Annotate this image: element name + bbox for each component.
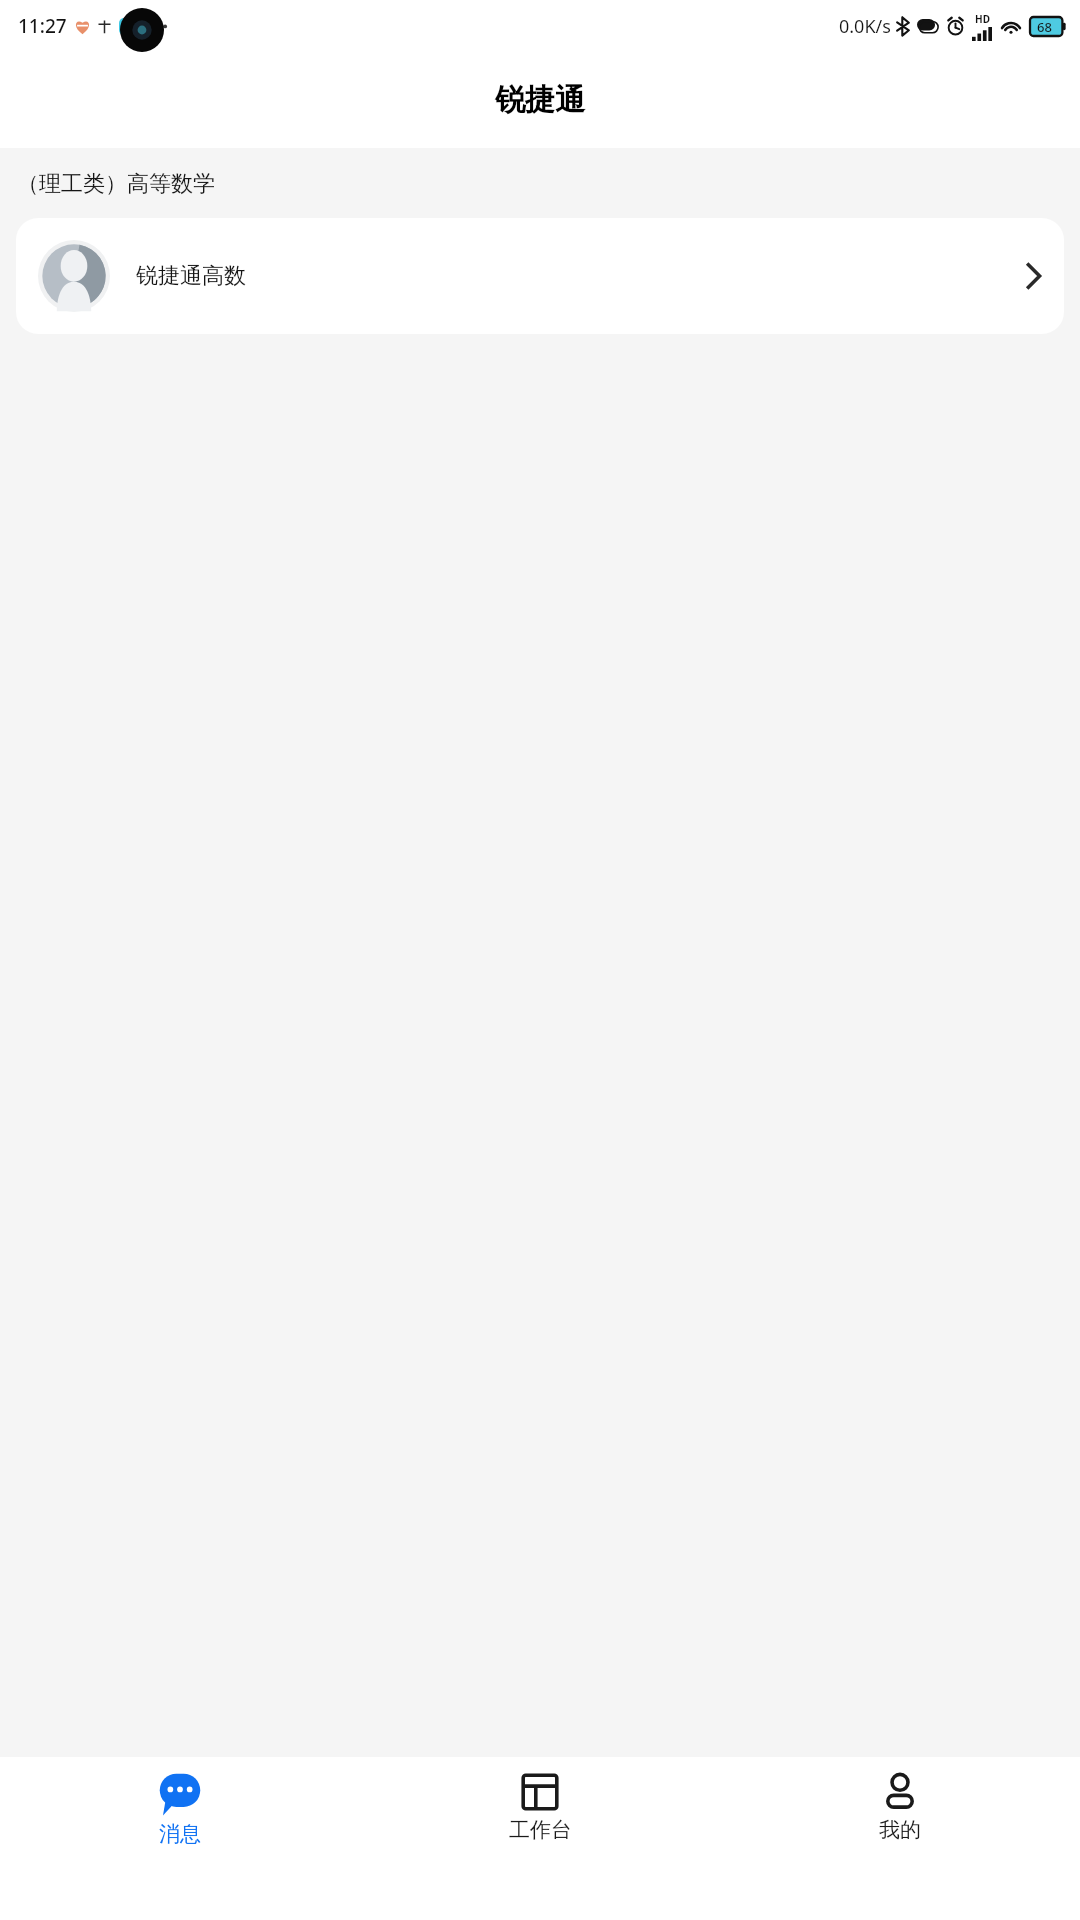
staticText: 锐捷通高数 <box>136 262 246 290</box>
button[interactable]: 消息 <box>0 1757 360 1920</box>
staticText: 0.0K/s <box>839 14 891 39</box>
staticText: 工作台 <box>509 1817 572 1843</box>
staticText: 11:27 <box>18 13 67 39</box>
staticText: （理工类）高等数学 <box>17 170 215 198</box>
button[interactable]: 我的 <box>720 1757 1080 1920</box>
staticText: 我的 <box>879 1817 921 1843</box>
staticText: 锐捷通 <box>495 81 585 119</box>
staticText: 消息 <box>159 1821 201 1847</box>
staticText: HD <box>975 12 990 26</box>
button[interactable]: 工作台 <box>360 1757 720 1920</box>
button[interactable]: 锐捷通高数 <box>16 218 1064 334</box>
staticText: 68 <box>1037 18 1052 36</box>
